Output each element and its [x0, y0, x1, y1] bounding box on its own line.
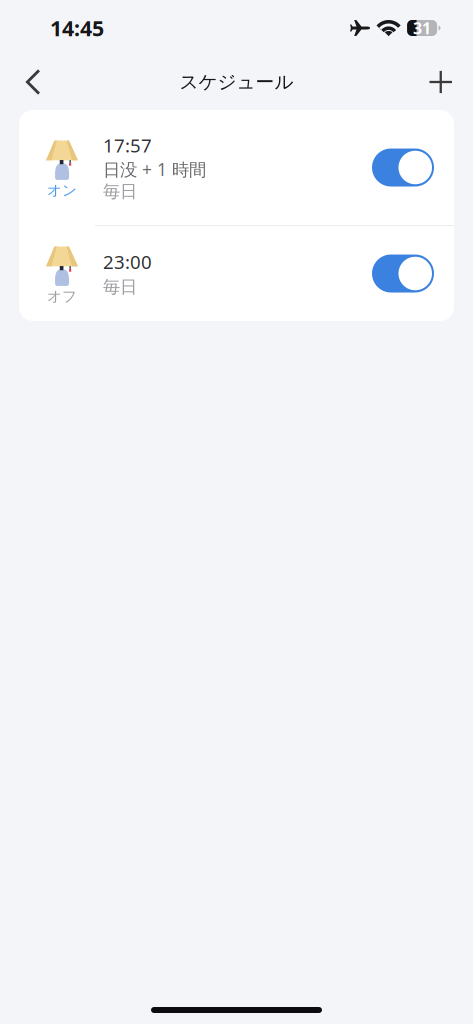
staticText: 毎日 — [103, 276, 137, 297]
staticText: スケジュール — [179, 70, 293, 93]
staticText: 毎日 — [103, 181, 137, 202]
staticText: 23:00 — [103, 249, 152, 274]
button[interactable]: オン — [19, 110, 454, 225]
staticText: 日没 + 1 時間 — [103, 158, 206, 181]
staticText: 14:45 — [50, 14, 104, 42]
staticText: オフ — [47, 287, 77, 305]
button[interactable]: Back — [14, 58, 51, 105]
button[interactable]: オフ — [19, 226, 454, 321]
staticText: 31 — [413, 17, 431, 39]
staticText: オン — [47, 181, 77, 199]
button[interactable]: Add — [418, 60, 463, 104]
staticText: 17:57 — [103, 133, 152, 158]
